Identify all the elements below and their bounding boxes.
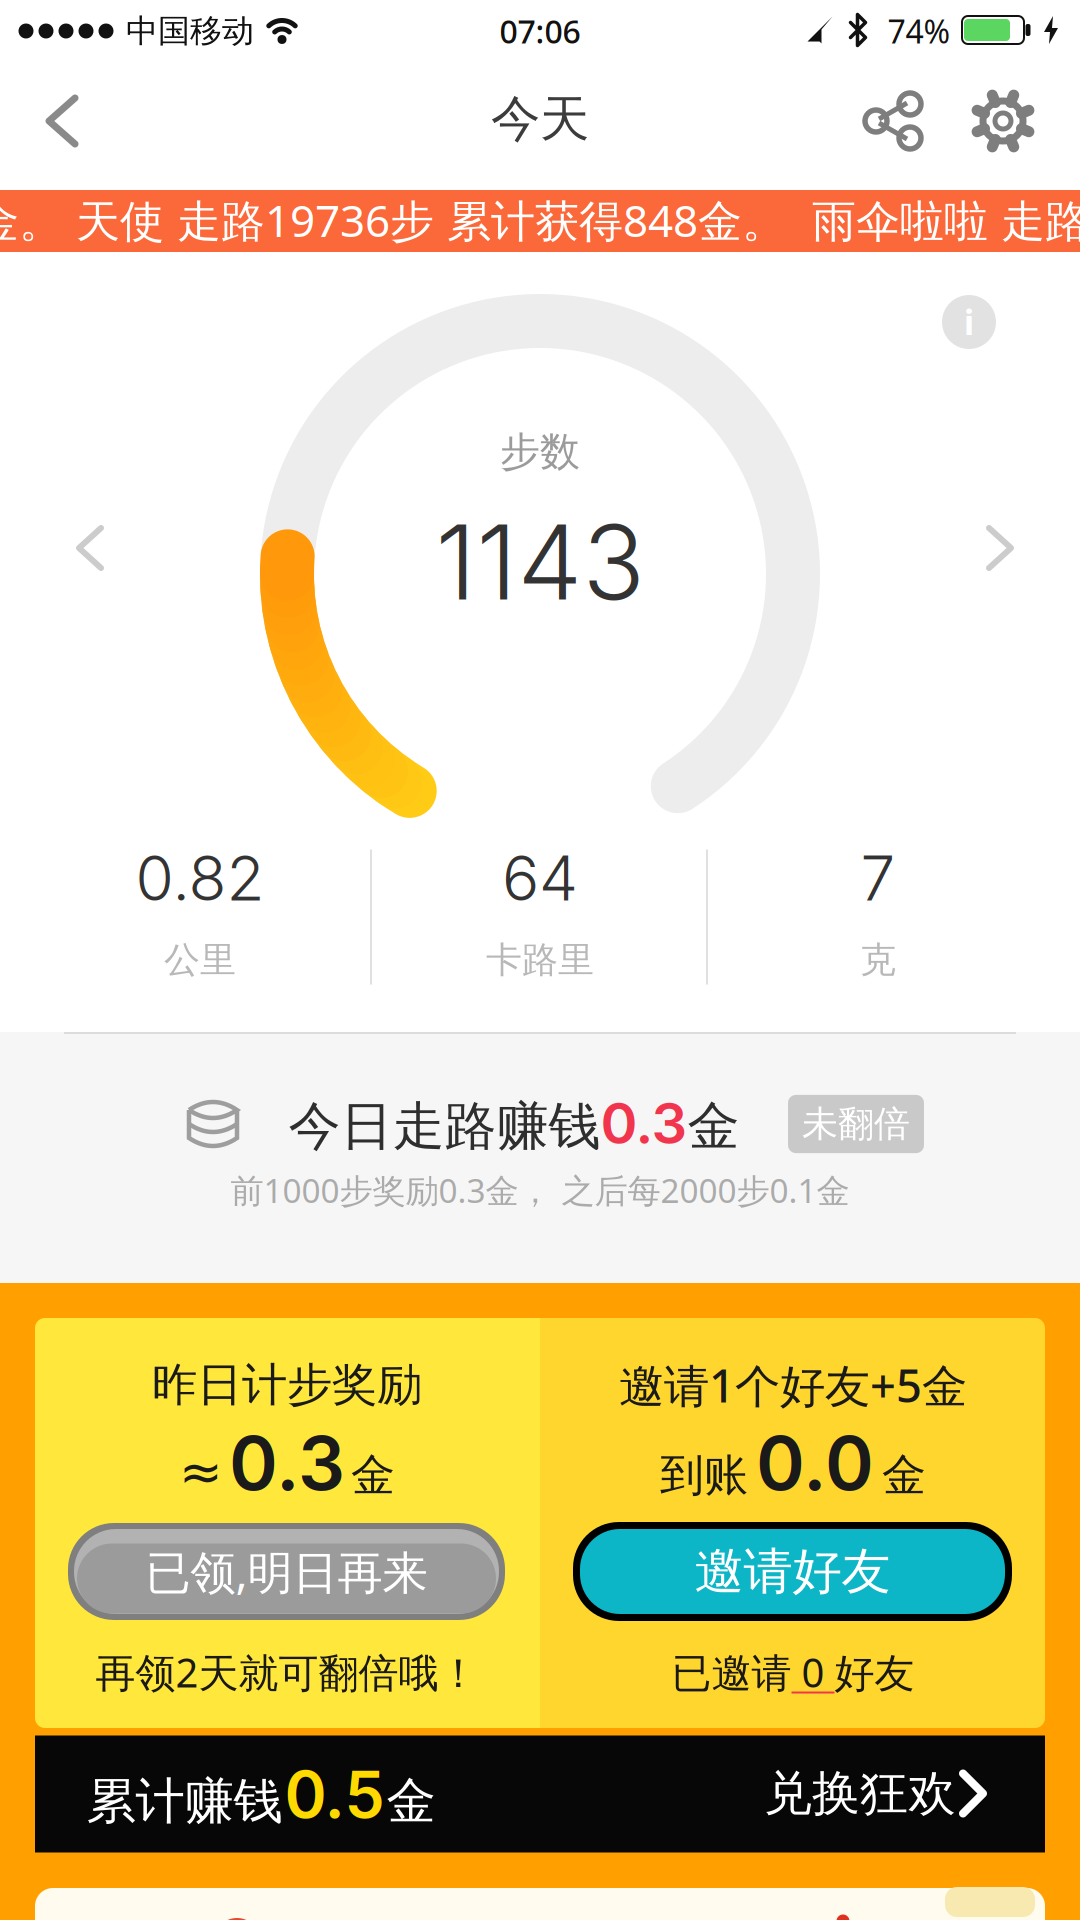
- button[interactable]: [965, 503, 1035, 593]
- staticText: 0.5: [284, 1756, 384, 1833]
- staticText: 64: [502, 840, 578, 915]
- staticText: 兑换狂欢: [764, 1764, 956, 1823]
- staticText: 已领,明日再来: [145, 1541, 427, 1602]
- staticText: 前1000步奖励0.3金， 之后每2000步0.1金: [230, 1168, 849, 1212]
- staticText: 卡路里: [486, 938, 594, 982]
- staticText: 已邀请 0 好友: [671, 1645, 914, 1698]
- staticText: 今日走路赚钱: [288, 1095, 600, 1158]
- staticText: 公里: [164, 938, 236, 982]
- button[interactable]: 已领,明日再来: [68, 1523, 505, 1620]
- staticText: 金: [351, 1448, 395, 1502]
- staticText: 金: [386, 1771, 435, 1832]
- staticText: 昨日计步奖励: [152, 1357, 422, 1413]
- staticText: ≈: [179, 1442, 223, 1501]
- staticText: 金: [882, 1448, 926, 1502]
- staticText: 07:06: [499, 10, 580, 52]
- staticText: 克: [860, 938, 896, 982]
- staticText: 金: [687, 1095, 739, 1158]
- button[interactable]: 邀请好友: [573, 1522, 1012, 1621]
- staticText: 74%: [887, 10, 950, 52]
- staticText: i: [964, 300, 973, 344]
- staticText: 累计赚钱: [86, 1771, 282, 1832]
- button[interactable]: [963, 81, 1043, 161]
- button[interactable]: [22, 76, 102, 166]
- staticText: 0.3: [229, 1418, 345, 1508]
- staticText: 0.0: [756, 1418, 874, 1508]
- button[interactable]: i: [934, 287, 1004, 357]
- staticText: 1143: [435, 500, 644, 624]
- staticText: 到账: [660, 1448, 748, 1502]
- staticText: 0.3: [600, 1090, 687, 1157]
- button[interactable]: [55, 503, 125, 593]
- staticText: 未翻倍: [802, 1102, 910, 1146]
- staticText: 金。 天使 走路19736步 累计获得848金。 雨伞啦啦 走路17365步 累…: [0, 191, 1080, 249]
- button[interactable]: [853, 81, 933, 161]
- staticText: 7: [860, 840, 895, 915]
- staticText: 步数: [500, 427, 580, 476]
- staticText: 邀请1个好友+5金: [619, 1355, 967, 1415]
- staticText: 0.82: [135, 840, 264, 915]
- button[interactable]: 累计赚钱: [35, 1735, 1045, 1852]
- staticText: 再领2天就可翻倍哦！: [95, 1645, 478, 1698]
- staticText: 今天: [491, 89, 589, 149]
- staticText: 邀请好友: [694, 1541, 890, 1602]
- staticText: 中国移动: [126, 11, 254, 51]
